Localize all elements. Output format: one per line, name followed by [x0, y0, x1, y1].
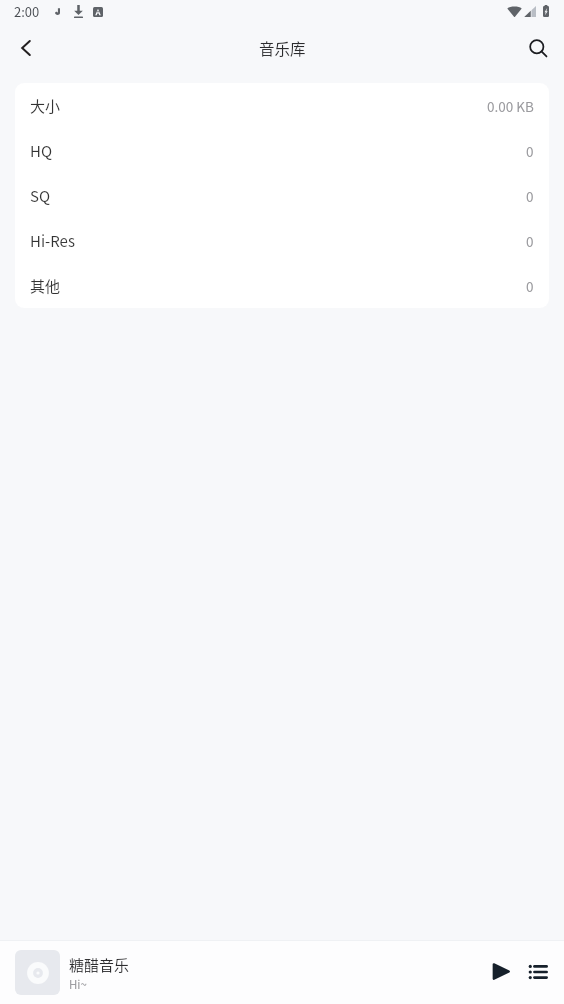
staticText: 大小: [30, 95, 61, 117]
button[interactable]: Playlist: [516, 951, 560, 992]
button[interactable]: 其他: [15, 263, 549, 308]
staticText: 0.00 KB: [487, 96, 534, 116]
staticText: 0: [526, 186, 534, 206]
staticText: 其他: [30, 275, 61, 297]
staticText: 0: [526, 231, 534, 251]
button[interactable]: Play: [486, 951, 516, 992]
button[interactable]: SQ: [15, 173, 549, 218]
staticText: 0: [526, 141, 534, 161]
staticText: 0: [526, 276, 534, 296]
button[interactable]: HQ: [15, 128, 549, 173]
staticText: SQ: [30, 185, 51, 207]
button[interactable]: 大小: [15, 83, 549, 128]
button[interactable]: Back: [0, 24, 52, 72]
staticText: 音乐库: [259, 37, 306, 59]
staticText: Hi-Res: [30, 230, 75, 252]
staticText: HQ: [30, 140, 53, 162]
staticText: Hi~: [69, 976, 87, 993]
button[interactable]: Hi-Res: [15, 218, 549, 263]
staticText: 2:00: [14, 2, 40, 21]
staticText: 糖醋音乐: [69, 954, 130, 976]
button[interactable]: Search: [512, 24, 564, 72]
button[interactable]: 糖醋音乐: [0, 941, 486, 1004]
